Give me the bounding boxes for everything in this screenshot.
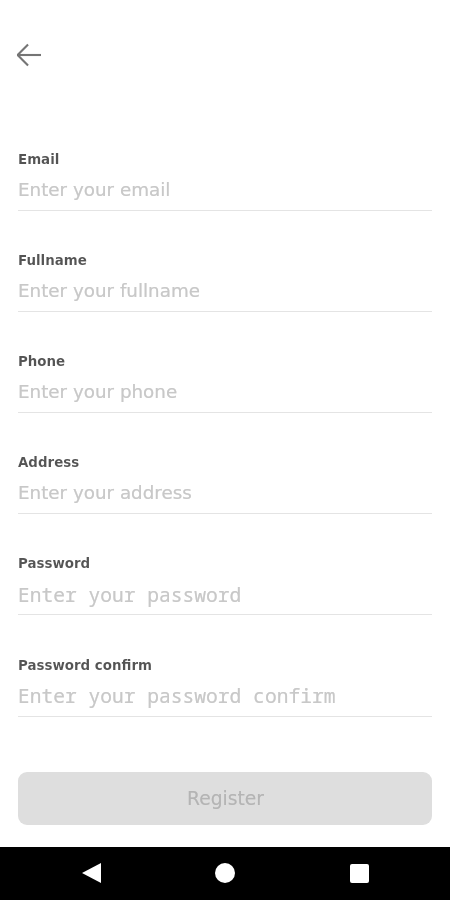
- button[interactable]: [18, 144, 432, 212]
- staticText: Enter your password confirm: [18, 682, 336, 709]
- button[interactable]: Back: [67, 849, 115, 897]
- staticText: Enter your address: [18, 482, 192, 503]
- button[interactable]: [18, 548, 432, 616]
- staticText: Enter your password: [18, 581, 242, 608]
- staticText: Enter your email: [18, 179, 171, 200]
- staticText: Register: [187, 788, 264, 810]
- button[interactable]: [18, 447, 432, 515]
- button[interactable]: [18, 346, 432, 414]
- staticText: Password: [18, 556, 91, 572]
- button[interactable]: Home: [201, 849, 249, 897]
- staticText: Address: [18, 455, 80, 471]
- button[interactable]: [18, 650, 432, 718]
- button[interactable]: Register: [18, 772, 432, 825]
- staticText: Fullname: [18, 253, 87, 269]
- staticText: Password confirm: [18, 658, 153, 674]
- staticText: Email: [18, 152, 60, 168]
- button[interactable]: Navigate back: [5, 31, 53, 79]
- button[interactable]: [18, 245, 432, 313]
- staticText: Enter your phone: [18, 381, 178, 402]
- staticText: Enter your fullname: [18, 280, 200, 301]
- button[interactable]: Recent apps: [335, 849, 383, 897]
- staticText: Phone: [18, 354, 66, 370]
